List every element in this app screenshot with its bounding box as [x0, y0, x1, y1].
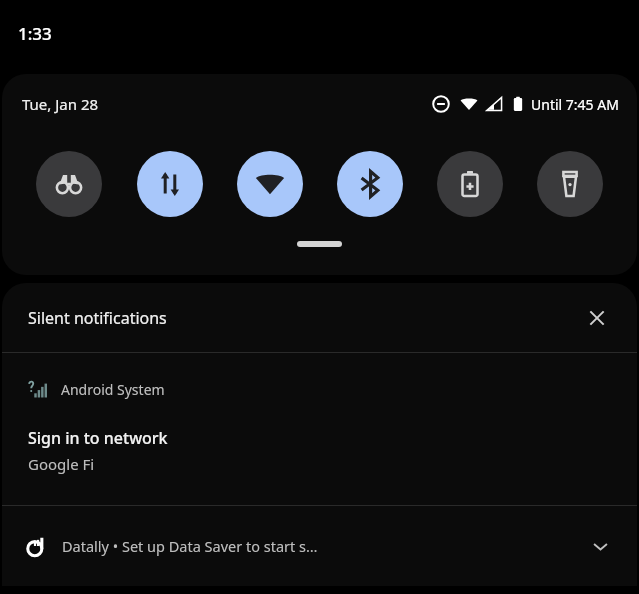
staticText: Until 7:45 AM — [531, 95, 619, 114]
button[interactable]: Bluetooth — [337, 151, 403, 217]
button[interactable] — [297, 241, 342, 247]
other: Battery — [510, 96, 526, 112]
button[interactable]: Silent notifications — [2, 283, 637, 352]
staticText: Sign in to network — [28, 427, 168, 449]
other: Mobile signal — [485, 95, 503, 113]
button[interactable]: Android System — [2, 353, 637, 505]
staticText: Silent notifications — [28, 307, 167, 329]
other: Wi-Fi — [460, 95, 478, 113]
other: Do not disturb — [432, 95, 450, 113]
button[interactable]: Battery saver — [437, 151, 503, 217]
button[interactable]: Screen record — [36, 151, 102, 217]
staticText: 1:33 — [18, 22, 52, 45]
button[interactable]: Clear all silent notifications — [577, 298, 617, 338]
staticText: Datally • Set up Data Saver to start sav… — [62, 536, 321, 556]
button[interactable]: Expand notification — [581, 527, 619, 565]
button[interactable]: Wi-Fi — [237, 151, 303, 217]
button[interactable]: Datally • Set up Data Saver to start sav… — [2, 506, 637, 586]
button[interactable]: Mobile data — [137, 151, 203, 217]
button[interactable]: Tue, Jan 28 — [22, 94, 99, 114]
button[interactable]: Flashlight — [537, 151, 603, 217]
staticText: Google Fi — [28, 454, 95, 474]
staticText: Android System — [61, 380, 165, 399]
